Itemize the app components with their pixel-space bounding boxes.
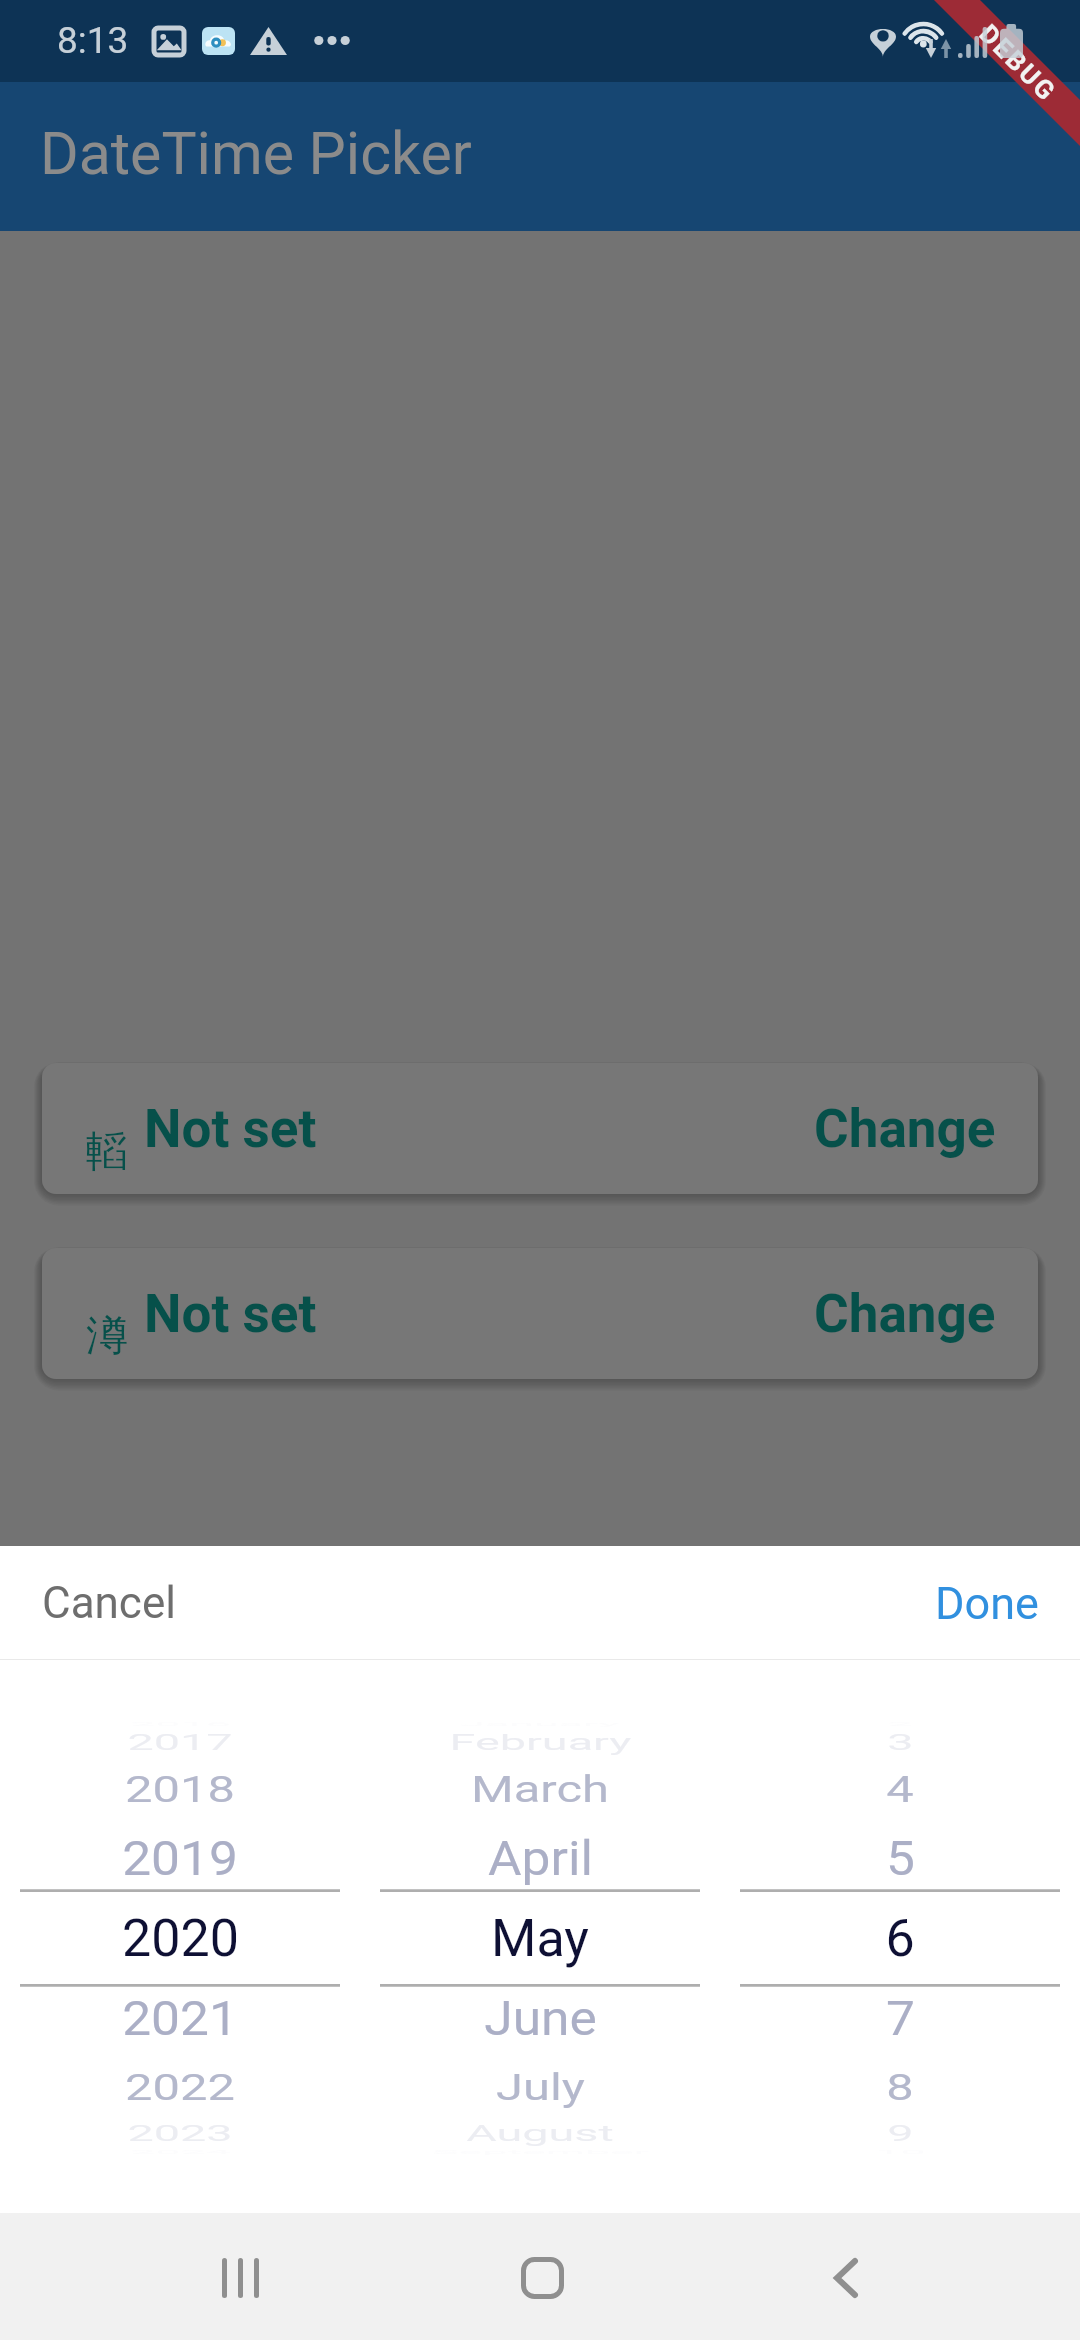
- staticText: 3: [887, 1731, 914, 1756]
- staticText: 2020: [122, 1908, 239, 1969]
- staticText: July: [496, 2066, 585, 2109]
- staticText: 6: [885, 1908, 915, 1969]
- staticText: 轁: [86, 1125, 128, 1178]
- staticText: 9: [887, 2122, 914, 2147]
- staticText: May: [491, 1908, 589, 1969]
- staticText: Change: [814, 1283, 996, 1345]
- staticText: DEBUG: [973, 18, 1063, 108]
- button[interactable]: Recents: [180, 2213, 300, 2340]
- staticText: Done: [935, 1577, 1039, 1630]
- staticText: 2017: [127, 1731, 233, 1756]
- button[interactable]: 轁: [42, 1063, 1038, 1194]
- staticText: Not set: [144, 1283, 317, 1345]
- staticText: Change: [814, 1098, 996, 1160]
- staticText: 8: [886, 2066, 914, 2109]
- staticText: 澊: [86, 1310, 128, 1363]
- staticText: 5: [886, 1830, 915, 1886]
- staticText: June: [484, 1990, 597, 2046]
- staticText: April: [488, 1830, 593, 1886]
- staticText: Not set: [144, 1098, 317, 1160]
- staticText: DateTime Picker: [40, 119, 472, 188]
- button[interactable]: Back: [785, 2213, 905, 2340]
- button[interactable]: Done: [935, 1577, 1039, 1630]
- button[interactable]: Home: [480, 2213, 600, 2340]
- button[interactable]: 澊: [42, 1248, 1038, 1379]
- staticText: 2021: [122, 1990, 238, 2046]
- staticText: 2023: [127, 2122, 233, 2147]
- staticText: February: [449, 1731, 632, 1756]
- button[interactable]: 2: [720, 1660, 1080, 2213]
- staticText: 2022: [125, 2066, 235, 2109]
- button[interactable]: Cancel: [42, 1577, 176, 1629]
- staticText: March: [471, 1768, 609, 1811]
- staticText: August: [466, 2122, 614, 2147]
- staticText: 7: [886, 1990, 915, 2046]
- staticText: 2019: [122, 1830, 238, 1886]
- staticText: 4: [886, 1768, 914, 1811]
- staticText: Cancel: [42, 1577, 176, 1629]
- staticText: 8:13: [57, 19, 129, 62]
- staticText: 2018: [125, 1768, 235, 1811]
- button[interactable]: January: [360, 1660, 720, 2213]
- button[interactable]: 2016: [0, 1660, 360, 2213]
